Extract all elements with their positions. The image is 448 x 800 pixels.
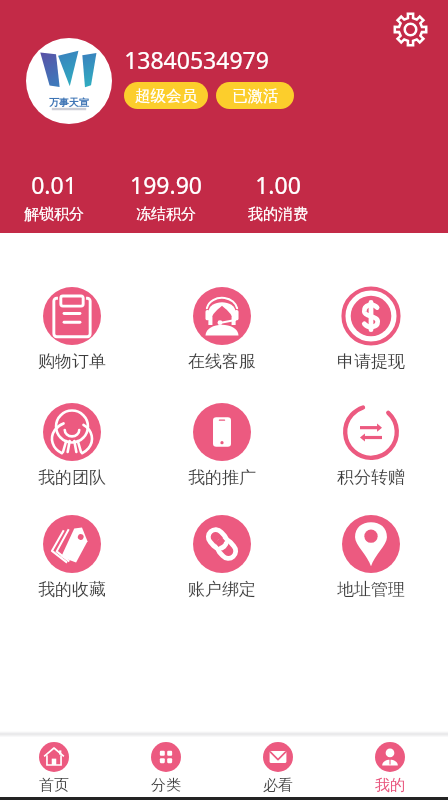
staticText: 13840534979: [124, 44, 269, 75]
button[interactable]: 分类: [110, 737, 222, 797]
staticText: 我的消费: [248, 205, 308, 224]
staticText: 已激活: [232, 86, 279, 106]
button[interactable]: 账户绑定: [147, 515, 296, 600]
staticText: 解锁积分: [24, 205, 84, 224]
button[interactable]: 申请提现: [296, 287, 445, 372]
button[interactable]: Profile avatar: [26, 38, 112, 124]
button[interactable]: 已激活: [216, 82, 294, 109]
button[interactable]: 首页: [0, 737, 110, 797]
button[interactable]: 我的收藏: [0, 515, 147, 600]
button[interactable]: 购物订单: [0, 287, 147, 372]
staticText: 万事天宣: [49, 96, 89, 109]
button[interactable]: 积分转赠: [296, 403, 445, 488]
staticText: 我的推广: [188, 467, 256, 488]
staticText: 冻结积分: [136, 205, 196, 224]
staticText: 分类: [151, 776, 181, 795]
staticText: 地址管理: [337, 579, 405, 600]
staticText: 199.90: [130, 169, 202, 200]
staticText: 积分转赠: [337, 467, 405, 488]
staticText: 0.01: [31, 169, 77, 200]
staticText: 我的收藏: [38, 579, 106, 600]
button[interactable]: 必看: [222, 737, 334, 797]
staticText: 1.00: [255, 169, 301, 200]
staticText: 购物订单: [38, 351, 106, 372]
staticText: 我的: [375, 776, 405, 795]
button[interactable]: 超级会员: [124, 82, 208, 109]
staticText: 我的团队: [38, 467, 106, 488]
button[interactable]: 我的: [334, 737, 446, 797]
staticText: 申请提现: [337, 351, 405, 372]
staticText: 账户绑定: [188, 579, 256, 600]
staticText: 超级会员: [135, 86, 197, 106]
button[interactable]: Settings: [393, 12, 428, 47]
staticText: 必看: [263, 776, 293, 795]
button[interactable]: 在线客服: [147, 287, 296, 372]
button[interactable]: 地址管理: [296, 515, 445, 600]
button[interactable]: 我的团队: [0, 403, 147, 488]
staticText: 在线客服: [188, 351, 256, 372]
staticText: 首页: [39, 776, 69, 795]
button[interactable]: 我的推广: [147, 403, 296, 488]
